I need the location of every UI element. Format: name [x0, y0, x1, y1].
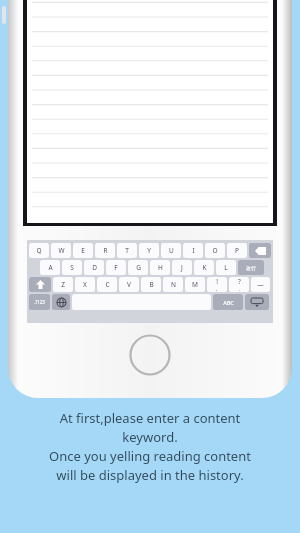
- button[interactable]: J: [172, 260, 192, 275]
- staticText: T: [125, 246, 129, 255]
- button[interactable]: Next keyboard: [52, 294, 70, 310]
- button[interactable]: O: [205, 243, 225, 258]
- staticText: E: [81, 246, 85, 255]
- staticText: G: [136, 263, 141, 272]
- button[interactable]: F: [106, 260, 126, 275]
- button[interactable]: K: [194, 260, 214, 275]
- button[interactable]: N: [163, 277, 183, 292]
- button[interactable]: R: [95, 243, 115, 258]
- button[interactable]: C: [97, 277, 117, 292]
- button[interactable]: Y: [139, 243, 159, 258]
- staticText: Q: [36, 246, 42, 255]
- staticText: U: [169, 246, 174, 255]
- staticText: Y: [147, 246, 151, 255]
- staticText: At first,please enter a content keyword.…: [49, 409, 251, 484]
- staticText: —: [257, 280, 264, 289]
- staticText: .: [239, 286, 241, 292]
- staticText: H: [158, 263, 163, 272]
- staticText: K: [202, 263, 207, 272]
- button[interactable]: —: [251, 277, 270, 292]
- button[interactable]: ABC: [213, 294, 243, 310]
- staticText: A: [48, 263, 53, 272]
- staticText: .?123: [34, 299, 45, 305]
- button[interactable]: D: [84, 260, 104, 275]
- button[interactable]: M: [185, 277, 205, 292]
- button[interactable]: L: [216, 260, 236, 275]
- button[interactable]: A: [40, 260, 60, 275]
- staticText: L: [224, 263, 228, 272]
- staticText: J: [181, 263, 183, 272]
- button[interactable]: E: [73, 243, 93, 258]
- staticText: D: [92, 263, 97, 272]
- staticText: B: [149, 280, 154, 289]
- staticText: !: [216, 277, 218, 286]
- button[interactable]: B: [141, 277, 161, 292]
- button[interactable]: .?123: [29, 294, 50, 310]
- button[interactable]: H: [150, 260, 170, 275]
- button[interactable]: Z: [53, 277, 73, 292]
- staticText: N: [171, 280, 176, 289]
- button[interactable]: X: [75, 277, 95, 292]
- staticText: V: [127, 280, 131, 289]
- button[interactable]: Q: [29, 243, 49, 258]
- staticText: I: [192, 246, 195, 255]
- button[interactable]: S: [62, 260, 82, 275]
- staticText: ?: [238, 277, 241, 286]
- button[interactable]: V: [119, 277, 139, 292]
- staticText: C: [105, 280, 110, 289]
- staticText: R: [103, 246, 108, 255]
- staticText: 改行: [246, 265, 256, 271]
- button[interactable]: !: [207, 277, 227, 292]
- button[interactable]: Hide keyboard: [245, 294, 269, 310]
- staticText: S: [70, 263, 74, 272]
- staticText: P: [235, 246, 239, 255]
- button[interactable]: U: [161, 243, 181, 258]
- button[interactable]: G: [128, 260, 148, 275]
- button[interactable]: I: [183, 243, 203, 258]
- button[interactable]: Backspace: [249, 243, 271, 258]
- staticText: O: [212, 246, 218, 255]
- button[interactable]: Shift: [29, 277, 51, 292]
- button[interactable]: 改行: [238, 260, 264, 275]
- button[interactable]: W: [51, 243, 71, 258]
- button[interactable]: P: [227, 243, 247, 258]
- staticText: ABC: [223, 299, 234, 306]
- staticText: Z: [61, 280, 65, 289]
- staticText: ,: [216, 286, 218, 292]
- staticText: F: [114, 263, 118, 272]
- staticText: W: [58, 246, 65, 255]
- staticText: X: [83, 280, 87, 289]
- button[interactable]: ?: [229, 277, 249, 292]
- button[interactable]: T: [117, 243, 137, 258]
- staticText: M: [192, 280, 198, 289]
